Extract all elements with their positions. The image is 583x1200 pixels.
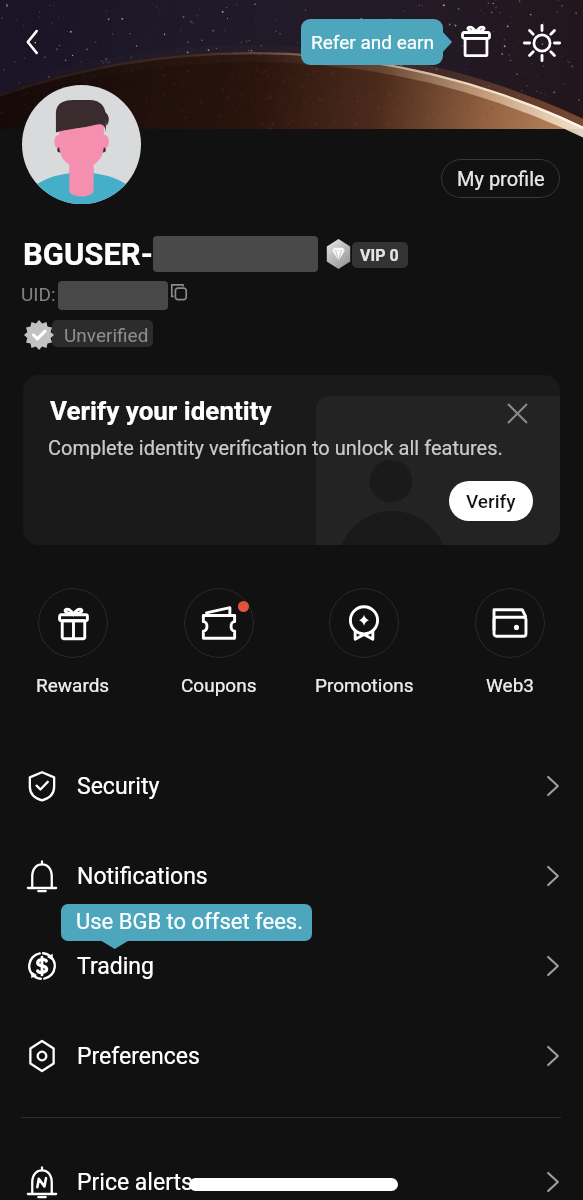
button[interactable]: Theme <box>521 22 562 63</box>
button[interactable]: Rewards <box>455 20 496 61</box>
button[interactable]: Verify your identity <box>23 375 560 545</box>
staticText: Unverified <box>64 324 149 346</box>
button[interactable]: Unverified <box>23 319 153 351</box>
button[interactable]: Back <box>12 21 54 63</box>
staticText: Price alerts <box>77 1169 193 1196</box>
button[interactable]: VIP 0 <box>325 239 408 269</box>
staticText: Notifications <box>77 863 208 890</box>
staticText: Refer and earn <box>311 31 434 53</box>
button[interactable]: Refer and earn <box>301 19 452 65</box>
button[interactable]: Notifications <box>0 831 583 921</box>
button[interactable]: Security <box>0 741 583 831</box>
staticText: VIP 0 <box>360 246 399 265</box>
staticText: Verify <box>466 490 516 512</box>
staticText: Use BGB to offset fees. <box>76 909 303 935</box>
button[interactable]: Profile picture <box>22 85 141 204</box>
button[interactable]: Use BGB to offset fees. <box>61 904 312 949</box>
staticText: Preferences <box>77 1043 200 1070</box>
staticText: Complete identity verification to unlock… <box>48 436 503 459</box>
staticText: Promotions <box>315 674 414 696</box>
button[interactable]: Verify <box>449 481 533 521</box>
button[interactable]: Promotions <box>304 588 424 696</box>
staticText: Web3 <box>486 674 534 696</box>
button[interactable]: Rewards <box>13 588 133 696</box>
button[interactable]: Trading <box>0 921 583 1011</box>
button[interactable]: Coupons <box>159 588 279 696</box>
staticText: Security <box>77 773 160 800</box>
button[interactable]: My profile <box>441 159 560 198</box>
staticText: Trading <box>77 953 154 980</box>
staticText: My profile <box>457 167 545 190</box>
staticText: Coupons <box>181 674 257 696</box>
staticText: BGUSER- <box>23 236 153 272</box>
staticText: Rewards <box>36 674 110 696</box>
staticText: UID: <box>21 283 56 305</box>
button[interactable]: Price alerts <box>0 1137 583 1200</box>
staticText: Verify your identity <box>50 396 272 426</box>
button[interactable]: Copy UID <box>170 283 188 301</box>
button[interactable]: Close <box>499 395 535 431</box>
button[interactable]: Preferences <box>0 1011 583 1101</box>
button[interactable]: Web3 <box>450 588 570 696</box>
